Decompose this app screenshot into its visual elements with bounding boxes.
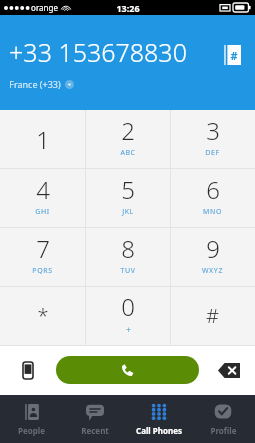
staticText: 3 xyxy=(206,114,220,147)
staticText: Recent xyxy=(81,425,109,436)
staticText: MNO xyxy=(203,207,222,217)
button[interactable]: 1 xyxy=(0,110,85,168)
staticText: France (+33) xyxy=(9,78,61,90)
button[interactable]: 0 xyxy=(85,286,170,345)
button[interactable]: 9 xyxy=(170,227,255,286)
button[interactable]: 7 xyxy=(0,227,85,286)
staticText: 13:26 xyxy=(116,2,140,14)
button[interactable]: 5 xyxy=(85,168,170,227)
staticText: 8 xyxy=(121,232,135,265)
button[interactable]: 4 xyxy=(0,168,85,227)
button[interactable]: People xyxy=(0,395,63,443)
staticText: # xyxy=(206,302,219,329)
button[interactable]: Backspace xyxy=(213,354,245,386)
staticText: +33 153678830 xyxy=(9,35,187,69)
staticText: GHI xyxy=(35,207,50,217)
staticText: ABC xyxy=(120,148,136,158)
staticText: Profile xyxy=(210,425,237,436)
button[interactable]: 8 xyxy=(85,227,170,286)
staticText: 0 xyxy=(121,290,135,323)
staticText: 5 xyxy=(121,173,135,206)
staticText: People xyxy=(18,425,45,436)
button[interactable]: Call mobile xyxy=(13,355,43,385)
button[interactable]: 3 xyxy=(170,110,255,168)
button[interactable]: Call Phones xyxy=(127,395,191,443)
staticText: 2 xyxy=(121,114,135,147)
button[interactable]: Profile xyxy=(191,395,255,443)
staticText: + xyxy=(126,324,131,335)
button[interactable]: * xyxy=(0,286,85,345)
staticText: WXYZ xyxy=(202,266,223,276)
staticText: orange xyxy=(31,2,58,13)
button[interactable]: 6 xyxy=(170,168,255,227)
staticText: * xyxy=(37,302,49,329)
button[interactable]: Recent xyxy=(63,395,127,443)
staticText: JKL xyxy=(122,207,134,217)
staticText: # xyxy=(230,48,238,63)
staticText: Call Phones xyxy=(136,425,182,436)
button[interactable]: # xyxy=(170,286,255,345)
staticText: 6 xyxy=(206,173,220,206)
staticText: 9 xyxy=(206,232,220,265)
staticText: 7 xyxy=(36,232,50,265)
staticText: 4 xyxy=(36,173,50,206)
staticText: TUV xyxy=(120,266,136,276)
button[interactable]: 2 xyxy=(85,110,170,168)
staticText: 1 xyxy=(36,123,50,156)
staticText: PQRS xyxy=(32,266,53,276)
button[interactable]: France (+33) xyxy=(9,78,74,90)
button[interactable]: Contacts xyxy=(219,42,245,68)
button[interactable]: Call xyxy=(56,356,199,384)
staticText: DEF xyxy=(205,148,220,158)
